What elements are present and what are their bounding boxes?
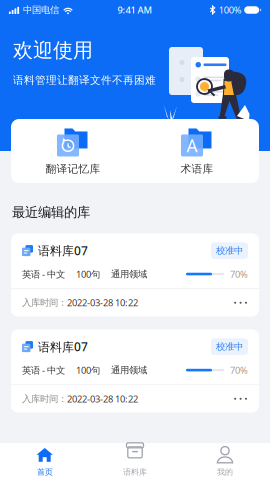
staticText: 首页 (37, 467, 53, 477)
staticText: 英语 - 中文 (22, 364, 65, 376)
staticText: 2022-03-28 10:22 (67, 393, 138, 405)
button[interactable]: 翻译记忆库 (11, 114, 135, 187)
staticText: 70% (230, 364, 248, 376)
staticText: 语料库07 (38, 243, 88, 258)
button[interactable]: A (135, 114, 259, 187)
staticText: 70% (230, 268, 248, 280)
staticText: 100句 (76, 268, 100, 280)
staticText: 我的 (217, 467, 233, 477)
staticText: 语料库 (123, 467, 147, 477)
staticText: 语料管理让翻译文件不再困难 (13, 74, 156, 87)
staticText: 通用领域 (111, 268, 147, 280)
button[interactable]: 我的 (180, 440, 270, 480)
staticText: 最近编辑的库 (12, 204, 90, 220)
staticText: 通用领域 (111, 364, 147, 376)
staticText: 100% (219, 4, 242, 16)
staticText: 校准中 (216, 341, 243, 352)
staticText: 入库时间： (22, 393, 67, 405)
staticText: 语料库07 (38, 339, 88, 355)
staticText: 术语库 (180, 162, 213, 175)
button[interactable]: 语料库 (90, 440, 180, 480)
staticText: 欢迎使用 (13, 38, 93, 63)
staticText: 校准中 (216, 245, 243, 256)
button[interactable]: 语料库07 (11, 329, 259, 412)
button[interactable]: 首页 (0, 440, 90, 480)
staticText: 2022-03-28 10:22 (67, 296, 138, 309)
staticText: 翻译记忆库 (45, 162, 100, 175)
staticText: 入库时间： (22, 297, 67, 308)
staticText: 英语 - 中文 (22, 268, 65, 280)
button[interactable]: 语料库07 (11, 233, 259, 316)
staticText: 9:41 AM (117, 4, 152, 16)
staticText: 100句 (76, 364, 100, 376)
staticText: A (186, 134, 197, 157)
staticText: 中国电信 (23, 4, 59, 16)
